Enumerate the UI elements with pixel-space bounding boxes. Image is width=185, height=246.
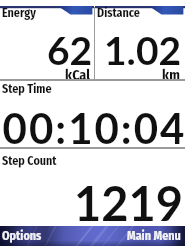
staticText: 62	[47, 27, 93, 74]
button[interactable]: Energy	[0, 0, 94, 79]
button[interactable]: Distance	[95, 0, 185, 79]
button[interactable]: Step Count	[0, 153, 185, 223]
staticText: Distance	[97, 6, 140, 20]
button[interactable]: Main Menu	[121, 226, 185, 246]
staticText: Options	[2, 229, 42, 243]
staticText: Energy	[2, 6, 36, 20]
staticText: Main Menu	[127, 229, 181, 243]
staticText: kCal	[65, 67, 90, 84]
staticText: Step Count	[2, 154, 57, 168]
staticText: 00:10:04	[2, 103, 185, 153]
button[interactable]: Step Time	[0, 81, 185, 147]
staticText: 1.02	[104, 27, 182, 74]
staticText: km	[162, 67, 180, 84]
staticText: 1219	[74, 175, 184, 231]
button[interactable]: Options	[0, 226, 48, 246]
staticText: Step Time	[2, 82, 52, 96]
